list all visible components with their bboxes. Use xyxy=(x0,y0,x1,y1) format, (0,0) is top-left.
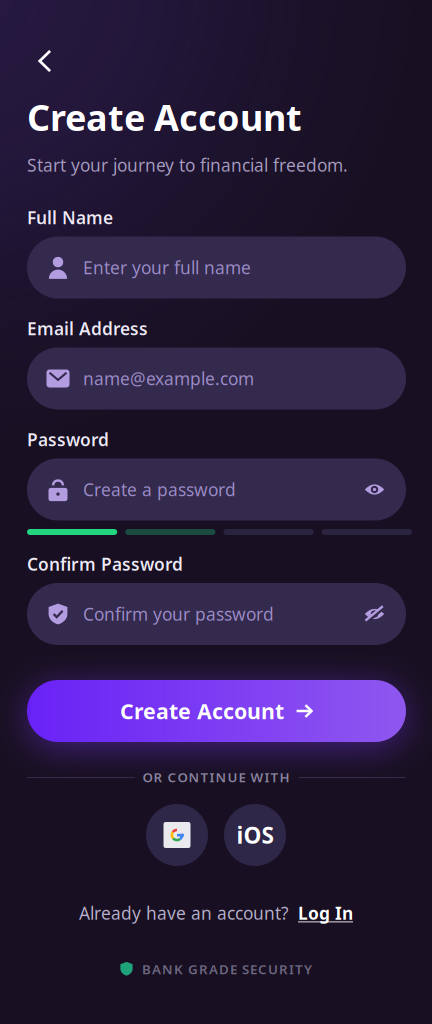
button[interactable]: Confirm your password xyxy=(27,583,406,645)
staticText: O R C O N T I N U E W I T H xyxy=(142,768,289,786)
staticText: Start your journey to financial freedom. xyxy=(27,153,348,176)
button[interactable]: name@example.com xyxy=(27,347,406,409)
staticText: Email Address xyxy=(27,317,148,340)
staticText: Create a password xyxy=(83,478,236,501)
staticText: Create Account xyxy=(27,93,302,141)
button[interactable]: Create a password xyxy=(27,458,406,520)
staticText: Already have an account? xyxy=(79,901,289,924)
staticText: iOS xyxy=(236,820,273,850)
staticText: Enter your full name xyxy=(83,256,251,279)
button[interactable]: Create Account xyxy=(27,680,406,742)
button[interactable]: Show password xyxy=(364,482,385,496)
button[interactable]: Continue with Google xyxy=(146,804,208,866)
staticText: Log In xyxy=(298,901,353,924)
staticText: Full Name xyxy=(27,206,113,229)
button[interactable]: Hide password xyxy=(364,605,385,623)
button[interactable]: Continue with Apple xyxy=(224,804,286,866)
button[interactable]: Enter your full name xyxy=(27,236,406,298)
staticText: Create Account xyxy=(120,697,284,725)
staticText: Confirm Password xyxy=(27,552,183,575)
staticText: name@example.com xyxy=(83,367,254,390)
staticText: Confirm your password xyxy=(83,602,274,625)
button[interactable]: Log In xyxy=(298,901,353,924)
staticText: B A N K G R A D E S E C U R I T Y xyxy=(142,960,312,978)
staticText: Password xyxy=(27,428,109,451)
button[interactable]: Back xyxy=(22,40,68,82)
